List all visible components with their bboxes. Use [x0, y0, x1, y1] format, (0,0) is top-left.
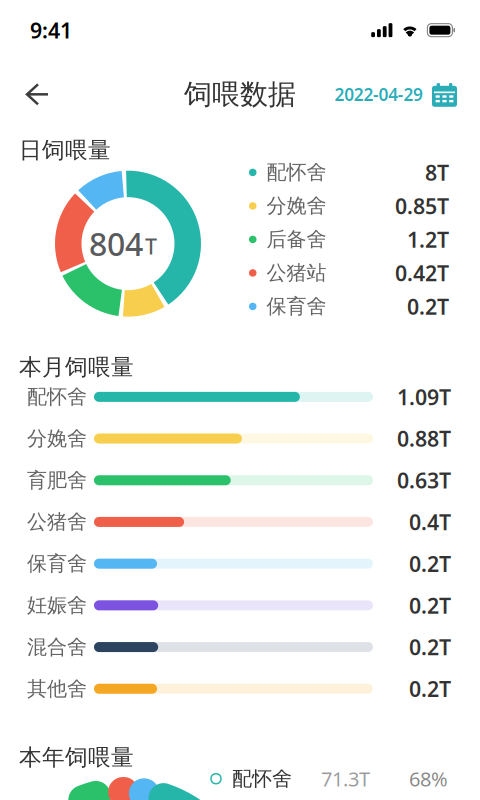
staticText: 804 [89, 222, 143, 265]
staticText: 混合舍 [27, 635, 87, 659]
staticText: 公猪站 [266, 261, 326, 285]
staticText: 2022-04-29 [335, 83, 423, 106]
button[interactable]: 配怀舍 [211, 766, 292, 791]
staticText: 配怀舍 [232, 766, 292, 791]
staticText: 保育舍 [266, 294, 326, 319]
staticText: 育肥舍 [27, 468, 87, 493]
staticText: 日饲喂量 [19, 136, 111, 164]
staticText: 0.2T [409, 549, 451, 578]
button[interactable]: Choose date [335, 82, 480, 107]
staticText: 妊娠舍 [27, 593, 87, 618]
staticText: 0.63T [397, 466, 451, 494]
staticText: 分娩舍 [27, 426, 87, 451]
staticText: 1.2T [407, 225, 449, 254]
staticText: 71.3T [321, 765, 370, 792]
staticText: 本月饲喂量 [19, 353, 134, 381]
staticText: 0.2T [409, 633, 451, 661]
staticText: 饲喂数据 [184, 77, 296, 111]
staticText: 0.85T [395, 192, 449, 220]
staticText: 配怀舍 [27, 385, 87, 409]
staticText: 分娩舍 [266, 194, 326, 218]
staticText: 本年饲喂量 [19, 744, 134, 771]
staticText: T [145, 232, 157, 260]
staticText: 8T [425, 158, 449, 187]
staticText: 0.42T [395, 259, 449, 287]
staticText: 后备舍 [266, 227, 326, 252]
staticText: 68% [409, 765, 448, 792]
staticText: 配怀舍 [266, 160, 326, 185]
staticText: 0.4T [409, 508, 451, 536]
staticText: 0.2T [409, 675, 451, 703]
staticText: 0.88T [397, 424, 451, 453]
staticText: 公猪舍 [27, 510, 87, 534]
staticText: 保育舍 [27, 551, 87, 576]
staticText: 9:41 [30, 16, 72, 44]
button[interactable]: Back [0, 73, 49, 116]
staticText: 其他舍 [27, 676, 87, 701]
staticText: 1.09T [397, 383, 451, 411]
staticText: 0.2T [407, 292, 449, 321]
staticText: 0.2T [409, 591, 451, 619]
